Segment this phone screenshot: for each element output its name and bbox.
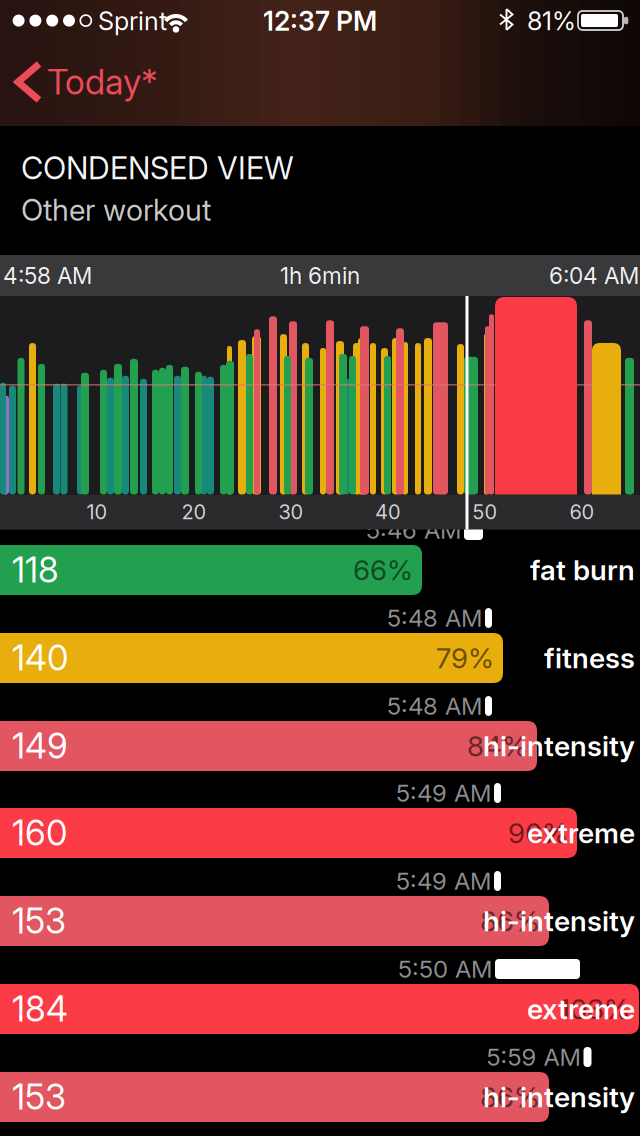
staticText: 10 — [86, 500, 107, 524]
staticText: 184 — [12, 989, 68, 1029]
staticText: 1h 6min — [280, 262, 360, 289]
staticText: 103% — [559, 992, 630, 1025]
staticText: 30 — [278, 500, 303, 524]
staticText: fat burn — [530, 553, 635, 586]
staticText: hi-intensity — [483, 729, 635, 762]
button[interactable]: Back to Today — [0, 52, 250, 114]
button[interactable]: 184 — [0, 984, 640, 1034]
staticText: 153 — [12, 1077, 66, 1117]
staticText: 81% — [527, 6, 576, 36]
staticText: hi-intensity — [483, 904, 635, 937]
staticText: 60 — [569, 500, 594, 524]
staticText: 5:59 AM — [486, 1043, 580, 1071]
staticText: 5:48 AM — [387, 692, 482, 720]
staticText: 140 — [12, 638, 68, 678]
staticText: 5:50 AM — [398, 955, 492, 983]
staticText: Sprint — [98, 6, 167, 36]
button[interactable]: 149 — [0, 721, 640, 771]
staticText: CONDENSED VIEW — [21, 150, 294, 186]
staticText: 5:46 AM — [366, 516, 461, 544]
staticText: 153 — [12, 901, 66, 941]
staticText: 50 — [472, 500, 497, 524]
staticText: extreme — [527, 992, 635, 1025]
staticText: 86% — [480, 1080, 540, 1113]
staticText: 86% — [480, 904, 540, 937]
button[interactable]: 160 — [0, 808, 640, 858]
staticText: 66% — [353, 553, 413, 586]
staticText: 40 — [375, 500, 401, 524]
staticText: 6:04 AM — [549, 262, 639, 289]
staticText: Today* — [47, 62, 158, 102]
staticText: fitness — [544, 641, 635, 674]
button[interactable]: 153 — [0, 1072, 640, 1122]
staticText: 90% — [508, 816, 568, 849]
staticText: 20 — [181, 500, 206, 524]
staticText: hi-intensity — [483, 1080, 635, 1113]
staticText: 5:49 AM — [396, 867, 491, 895]
staticText: 84% — [467, 729, 528, 762]
staticText: 79% — [436, 641, 494, 674]
staticText: 5:49 AM — [396, 779, 491, 807]
button[interactable]: 140 — [0, 633, 640, 683]
button[interactable]: 118 — [0, 545, 640, 595]
staticText: 118 — [12, 550, 59, 590]
staticText: Other workout — [21, 193, 211, 227]
staticText: 4:58 AM — [3, 262, 92, 289]
staticText: 5:48 AM — [387, 604, 482, 632]
staticText: extreme — [527, 816, 635, 849]
staticText: 149 — [12, 726, 68, 766]
staticText: 160 — [12, 813, 67, 853]
button[interactable]: 153 — [0, 896, 640, 946]
staticText: 12:37 PM — [263, 5, 377, 37]
